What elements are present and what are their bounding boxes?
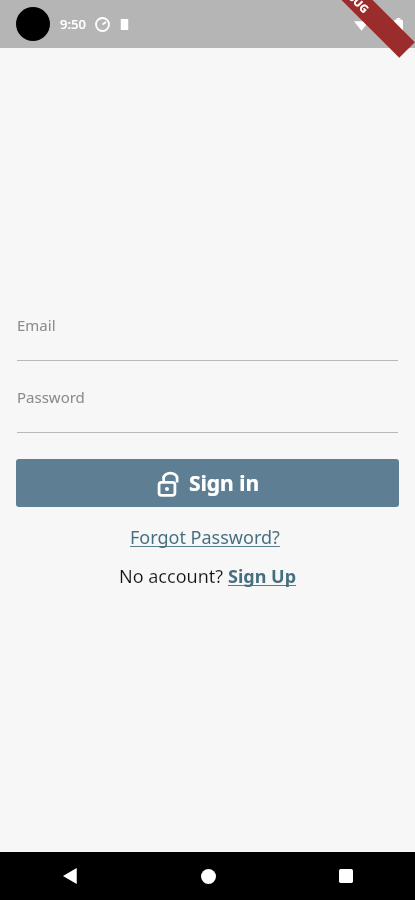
- staticText: Password: [17, 387, 85, 407]
- button[interactable]: Back: [0, 852, 139, 900]
- button[interactable]: Home: [139, 852, 277, 900]
- button[interactable]: Password: [0, 382, 415, 433]
- button[interactable]: Forgot Password?: [122, 523, 293, 552]
- button[interactable]: Sign Up: [228, 564, 297, 589]
- button[interactable]: Recent apps: [277, 852, 415, 900]
- staticText: DEBUG: [335, 0, 372, 16]
- staticText: Forgot Password?: [130, 525, 285, 550]
- staticText: 9:50: [60, 15, 86, 33]
- staticText: Sign Up: [228, 564, 297, 589]
- button[interactable]: Sign in: [16, 459, 399, 507]
- staticText: No account?: [119, 564, 228, 589]
- staticText: Email: [17, 315, 56, 335]
- button[interactable]: Email: [0, 310, 415, 361]
- staticText: Sign in: [189, 469, 260, 498]
